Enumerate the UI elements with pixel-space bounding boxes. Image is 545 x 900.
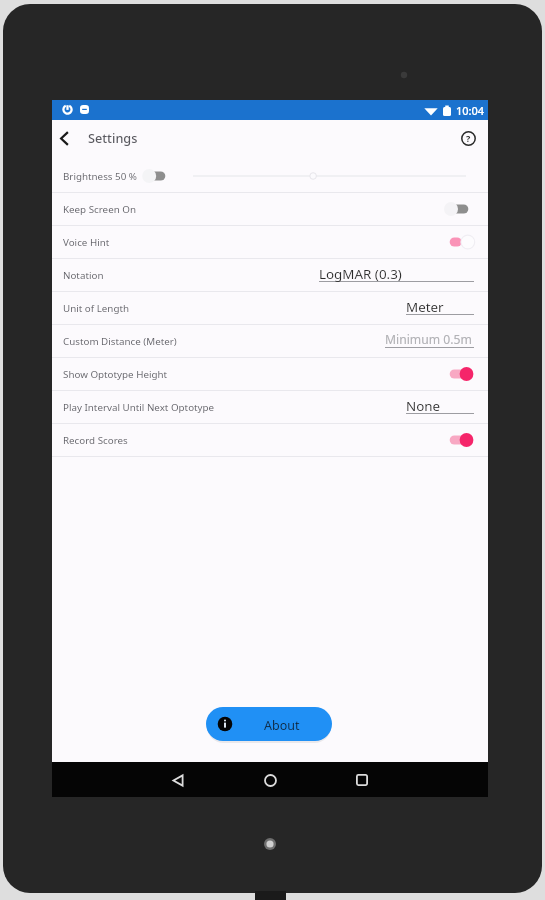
staticText: Unit of Length [63, 302, 130, 315]
button[interactable]: Minimum 0.5m [385, 331, 474, 353]
staticText: Voice Hint [63, 236, 110, 249]
button[interactable]: On [444, 431, 474, 449]
staticText: Custom Distance (Meter) [63, 335, 177, 348]
staticText: None [406, 397, 441, 415]
other: Auto brightness [138, 167, 172, 185]
button[interactable]: Recent apps [347, 765, 377, 795]
button[interactable]: Keep Screen On [52, 193, 488, 225]
staticText: Keep Screen On [63, 203, 136, 216]
button[interactable]: None [406, 397, 474, 419]
staticText: Minimum 0.5m [385, 331, 472, 348]
staticText: Play Interval Until Next Optotype [63, 401, 215, 414]
button[interactable]: Record Scores [52, 424, 488, 456]
other: Brightness slider [193, 169, 466, 183]
staticText: Settings [88, 129, 138, 146]
button[interactable]: Play Interval Until Next Optotype [52, 391, 488, 423]
button[interactable]: Brightness 50 % [52, 160, 488, 192]
staticText: Meter [406, 298, 444, 316]
button[interactable]: Help [455, 125, 481, 151]
button[interactable]: On [444, 233, 474, 251]
button[interactable]: Navigate up [49, 123, 79, 153]
staticText: Show Optotype Height [63, 368, 168, 381]
staticText: 10:04 [456, 103, 485, 118]
button[interactable]: Off [444, 200, 474, 218]
button[interactable]: LogMAR (0.3) [319, 265, 474, 287]
staticText: Brightness 50 % [63, 170, 137, 183]
button[interactable]: Show Optotype Height [52, 358, 488, 390]
button[interactable]: Home [255, 765, 285, 795]
button[interactable]: On [444, 365, 474, 383]
staticText: Record Scores [63, 434, 128, 447]
button[interactable]: About [206, 707, 332, 741]
button[interactable]: Custom Distance (Meter) [52, 325, 488, 357]
button[interactable]: Meter [406, 298, 474, 320]
button[interactable]: Unit of Length [52, 292, 488, 324]
staticText: About [264, 717, 300, 734]
staticText: ? [466, 132, 471, 144]
button[interactable]: Back [163, 765, 193, 795]
staticText: Notation [63, 269, 104, 282]
staticText: LogMAR (0.3) [319, 265, 402, 283]
button[interactable]: Voice Hint [52, 226, 488, 258]
button[interactable]: Notation [52, 259, 488, 291]
